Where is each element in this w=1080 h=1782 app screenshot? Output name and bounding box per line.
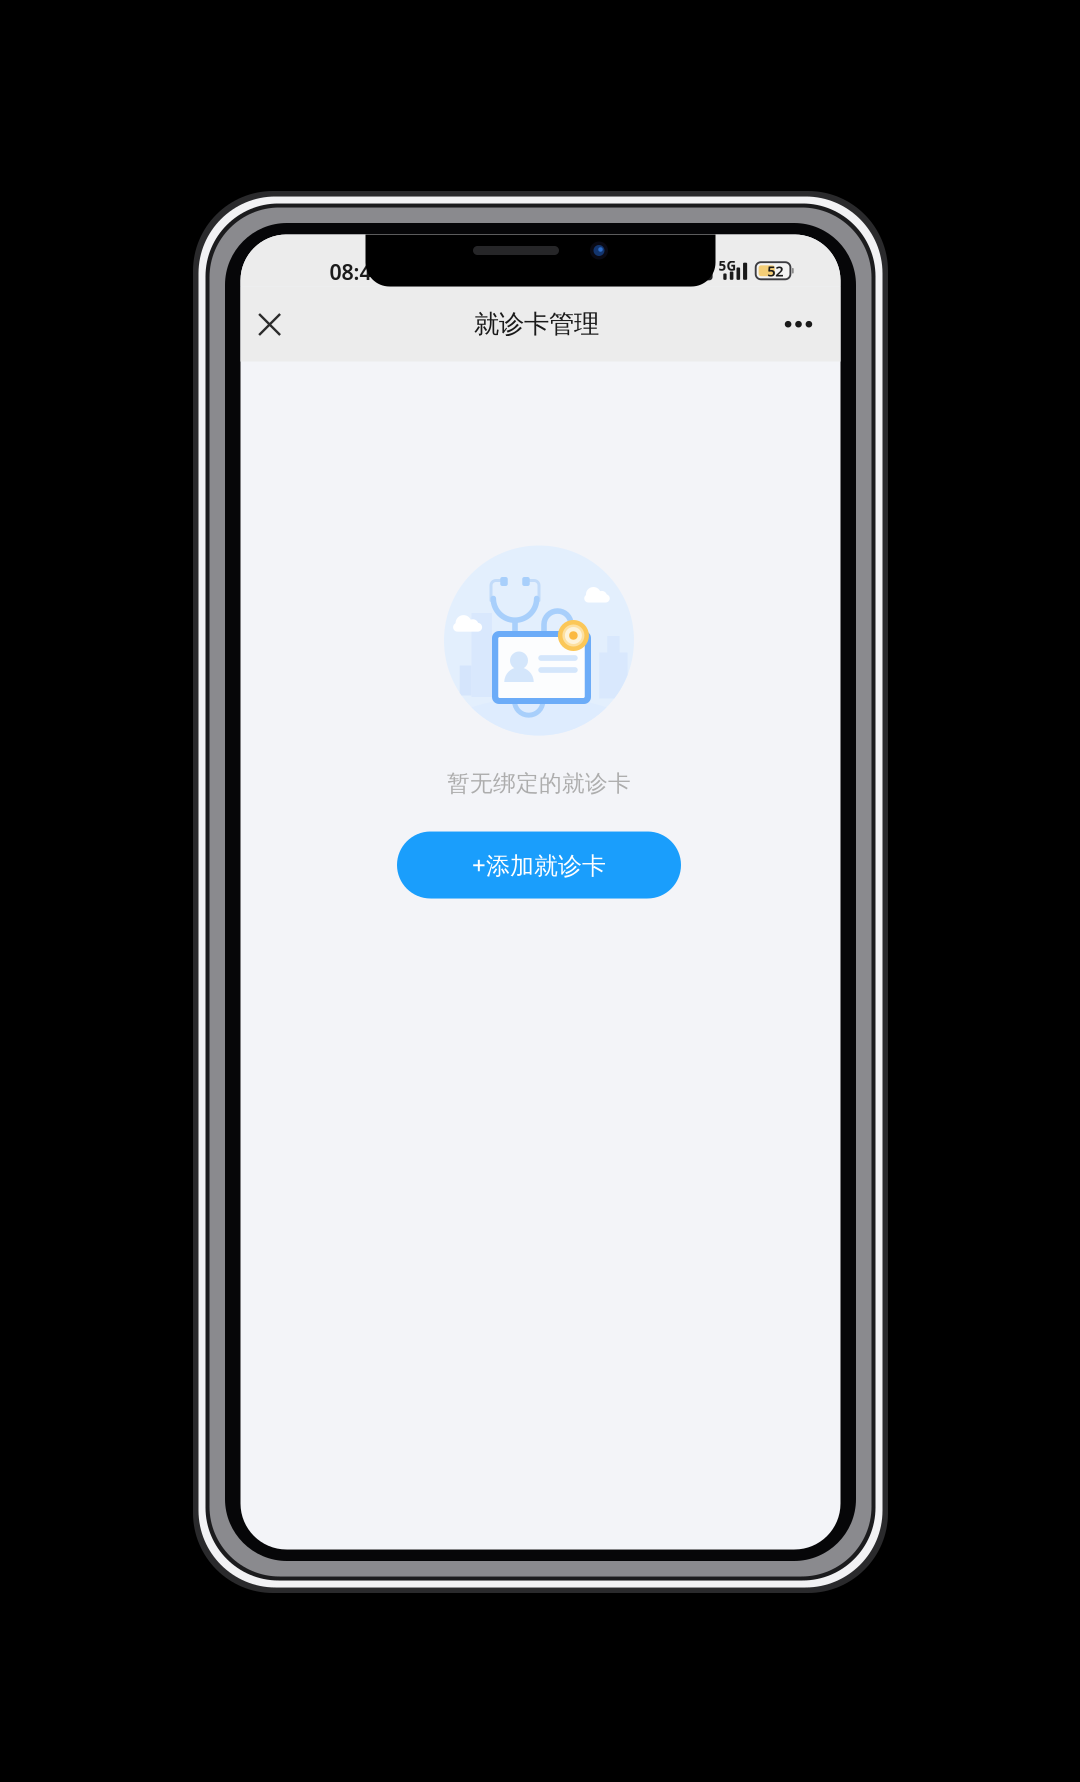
staticText: +添加就诊卡 [472,849,606,881]
button[interactable]: +添加就诊卡 [397,831,681,898]
staticText: 暂无绑定的就诊卡 [447,770,631,797]
button[interactable]: Close [242,296,298,352]
staticText: 08:44 [329,258,383,286]
staticText: HD [694,265,712,280]
staticText: 就诊卡管理 [474,308,599,339]
staticText: 52 [767,261,783,281]
staticText: 5G [718,257,736,274]
button[interactable]: More options [770,296,826,352]
